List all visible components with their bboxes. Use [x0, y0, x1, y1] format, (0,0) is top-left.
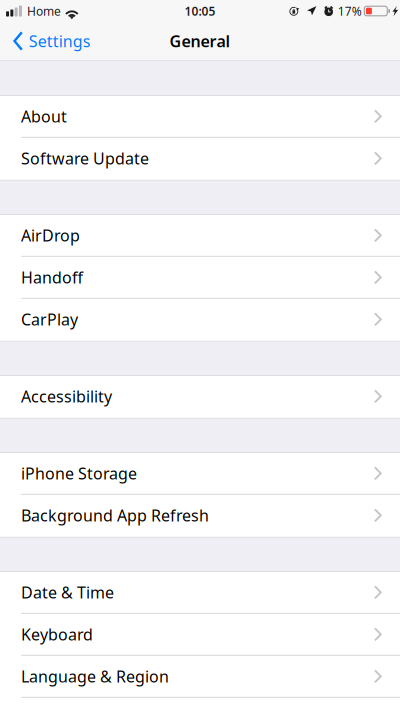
staticText: Settings	[29, 30, 91, 52]
staticText: Accessibility	[21, 386, 112, 407]
staticText: Handoff	[21, 267, 83, 288]
button[interactable]: Settings	[0, 22, 101, 60]
staticText: 17%	[338, 3, 362, 19]
button[interactable]: Date & Time	[0, 572, 400, 614]
button[interactable]: CarPlay	[0, 299, 400, 341]
button[interactable]: Background App Refresh	[0, 495, 400, 537]
staticText: Date & Time	[21, 582, 114, 603]
staticText: 10:05	[184, 3, 215, 19]
button[interactable]: iPhone Storage	[0, 453, 400, 495]
staticText: Language & Region	[21, 666, 169, 687]
staticText: Home	[27, 3, 61, 19]
button[interactable]: Software Update	[0, 138, 400, 180]
staticText: CarPlay	[21, 309, 78, 330]
button[interactable]: About	[0, 96, 400, 138]
staticText: AirDrop	[21, 225, 80, 246]
staticText: General	[169, 30, 230, 52]
button[interactable]: Language & Region	[0, 656, 400, 698]
staticText: Software Update	[21, 148, 149, 169]
button[interactable]: AirDrop	[0, 215, 400, 257]
staticText: Background App Refresh	[21, 505, 209, 526]
staticText: About	[21, 106, 67, 127]
button[interactable]: Accessibility	[0, 376, 400, 418]
button[interactable]: Handoff	[0, 257, 400, 299]
staticText: Keyboard	[21, 624, 93, 645]
staticText: iPhone Storage	[21, 463, 137, 484]
button[interactable]: Keyboard	[0, 614, 400, 656]
